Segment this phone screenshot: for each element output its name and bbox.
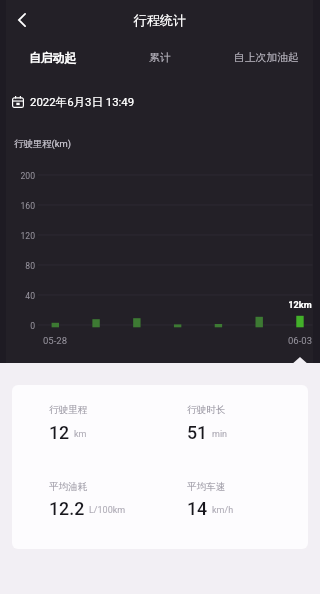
staticText: 12 bbox=[49, 422, 70, 443]
staticText: km/h bbox=[212, 505, 234, 516]
button[interactable]: 自上次加油起 bbox=[213, 46, 320, 70]
staticText: 200 bbox=[0, 171, 35, 181]
button[interactable]: Back bbox=[7, 0, 37, 40]
staticText: 平均车速 bbox=[187, 481, 226, 493]
staticText: 120 bbox=[0, 231, 35, 241]
staticText: 行程统计 bbox=[0, 12, 320, 29]
staticText: L/100km bbox=[89, 505, 126, 516]
staticText: 14 bbox=[187, 498, 208, 519]
staticText: 2022年6月3日 13:49 bbox=[30, 95, 135, 109]
staticText: 行驶里程 bbox=[49, 404, 88, 416]
button[interactable]: 自启动起 bbox=[0, 46, 106, 70]
staticText: 12.2 bbox=[49, 498, 85, 519]
staticText: 累计 bbox=[149, 51, 171, 65]
staticText: 05-28 bbox=[35, 335, 75, 346]
staticText: 06-03 bbox=[280, 335, 320, 346]
staticText: 51 bbox=[187, 422, 208, 443]
staticText: 40 bbox=[0, 291, 35, 301]
staticText: 80 bbox=[0, 261, 35, 271]
staticText: min bbox=[212, 429, 228, 440]
staticText: 行驶里程(km) bbox=[14, 138, 72, 150]
button[interactable]: 2022年6月3日 13:49 bbox=[12, 93, 135, 111]
staticText: 平均油耗 bbox=[49, 481, 88, 493]
staticText: 160 bbox=[0, 201, 35, 211]
button[interactable]: 累计 bbox=[106, 46, 213, 70]
staticText: 0 bbox=[0, 321, 35, 331]
staticText: km bbox=[74, 429, 87, 440]
staticText: 自上次加油起 bbox=[234, 51, 299, 65]
staticText: 行驶时长 bbox=[187, 404, 226, 416]
staticText: 12km bbox=[280, 299, 320, 310]
staticText: 自启动起 bbox=[29, 51, 77, 66]
